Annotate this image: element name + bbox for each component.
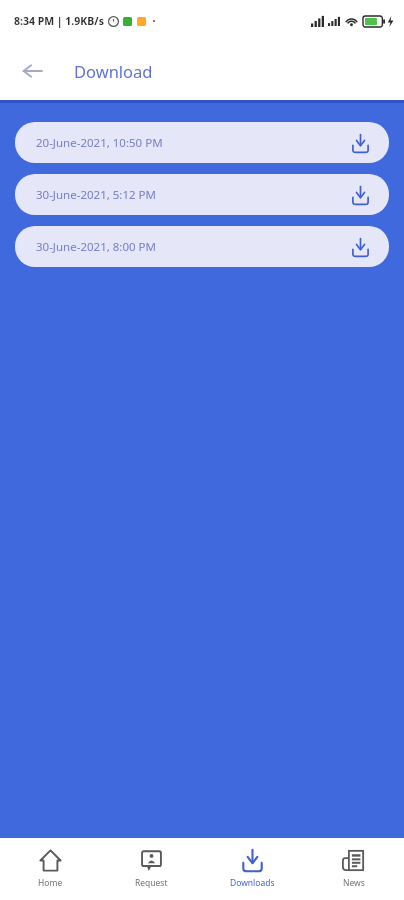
button[interactable]: Downloads xyxy=(202,838,303,900)
button[interactable]: News xyxy=(303,838,404,900)
staticText: Request xyxy=(135,877,168,889)
button[interactable]: Request xyxy=(101,838,202,900)
button[interactable]: Back xyxy=(10,49,54,93)
staticText: 30-June-2021, 5:12 PM xyxy=(36,187,156,203)
staticText: News xyxy=(343,877,365,889)
staticText: Downloads xyxy=(230,877,275,889)
button[interactable]: 30-June-2021, 8:00 PM xyxy=(15,226,389,267)
staticText: 20-June-2021, 10:50 PM xyxy=(36,135,163,151)
staticText: 8:34 PM | 1.9KB/s xyxy=(14,14,104,28)
staticText: Download xyxy=(74,60,153,82)
button[interactable]: 30-June-2021, 5:12 PM xyxy=(15,174,389,215)
staticText: Home xyxy=(38,877,63,889)
button[interactable]: 20-June-2021, 10:50 PM xyxy=(15,122,389,163)
button[interactable]: Home xyxy=(0,838,101,900)
staticText: 30-June-2021, 8:00 PM xyxy=(36,239,156,255)
